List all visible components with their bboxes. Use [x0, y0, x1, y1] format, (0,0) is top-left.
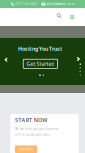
staticText: START NOW	[15, 116, 47, 124]
button[interactable]: Previous slide	[4, 57, 8, 62]
staticText: Learn More	[19, 147, 34, 151]
button[interactable]: 027 123 4567	[10, 2, 38, 6]
staticText: Get Started	[26, 60, 54, 67]
button[interactable]: Learn More	[15, 145, 37, 153]
staticText: online quickly and easily	[15, 133, 49, 136]
staticText: Hosting You Trust	[18, 45, 62, 52]
staticText: We can help get your business	[15, 127, 58, 131]
button[interactable]: admin@example.co.nz	[41, 2, 74, 6]
staticText: admin@example.co.nz	[46, 2, 74, 6]
button[interactable]: Next slide	[76, 57, 80, 61]
button[interactable]: Menu	[70, 15, 75, 19]
button[interactable]: Search	[57, 13, 62, 18]
button[interactable]: Get Started	[23, 59, 58, 68]
staticText: 027 123 4567	[16, 2, 38, 6]
